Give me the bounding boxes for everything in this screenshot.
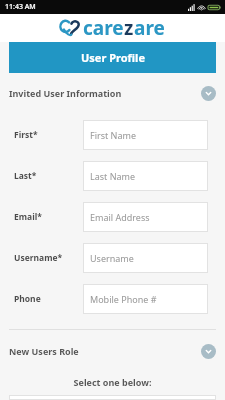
staticText: New Users Role	[9, 345, 79, 357]
other: Collapse Invited User Information	[201, 86, 216, 101]
button[interactable]: Phone	[0, 278, 225, 319]
staticText: Email Address	[90, 211, 150, 223]
staticText: Invited User Information	[9, 87, 122, 99]
staticText: First Name	[90, 129, 136, 141]
button[interactable]: New Users Role	[0, 340, 225, 362]
staticText: Username*	[14, 252, 63, 264]
staticText: Last*	[14, 170, 37, 182]
staticText: Email*	[14, 211, 42, 223]
staticText: Last Name	[90, 170, 136, 182]
staticText: Username	[90, 252, 134, 264]
staticText: Phone	[14, 293, 41, 305]
staticText: Mobile Phone #	[90, 293, 157, 305]
staticText: First*	[14, 129, 38, 141]
button[interactable]: First*	[0, 114, 225, 155]
staticText: User Profile	[81, 50, 145, 65]
other: Collapse New Users Role	[201, 344, 216, 359]
staticText: are	[134, 15, 165, 41]
button[interactable]: Invited User Information	[0, 82, 225, 104]
staticText: care	[83, 15, 124, 41]
staticText: 11:43 AM	[5, 2, 36, 12]
button[interactable]: User Profile	[9, 42, 216, 73]
button[interactable]: Username*	[0, 237, 225, 278]
button[interactable]: Last*	[0, 155, 225, 196]
button[interactable]: Email*	[0, 196, 225, 237]
staticText: Select one below:	[0, 376, 225, 388]
staticText: z	[124, 15, 134, 41]
